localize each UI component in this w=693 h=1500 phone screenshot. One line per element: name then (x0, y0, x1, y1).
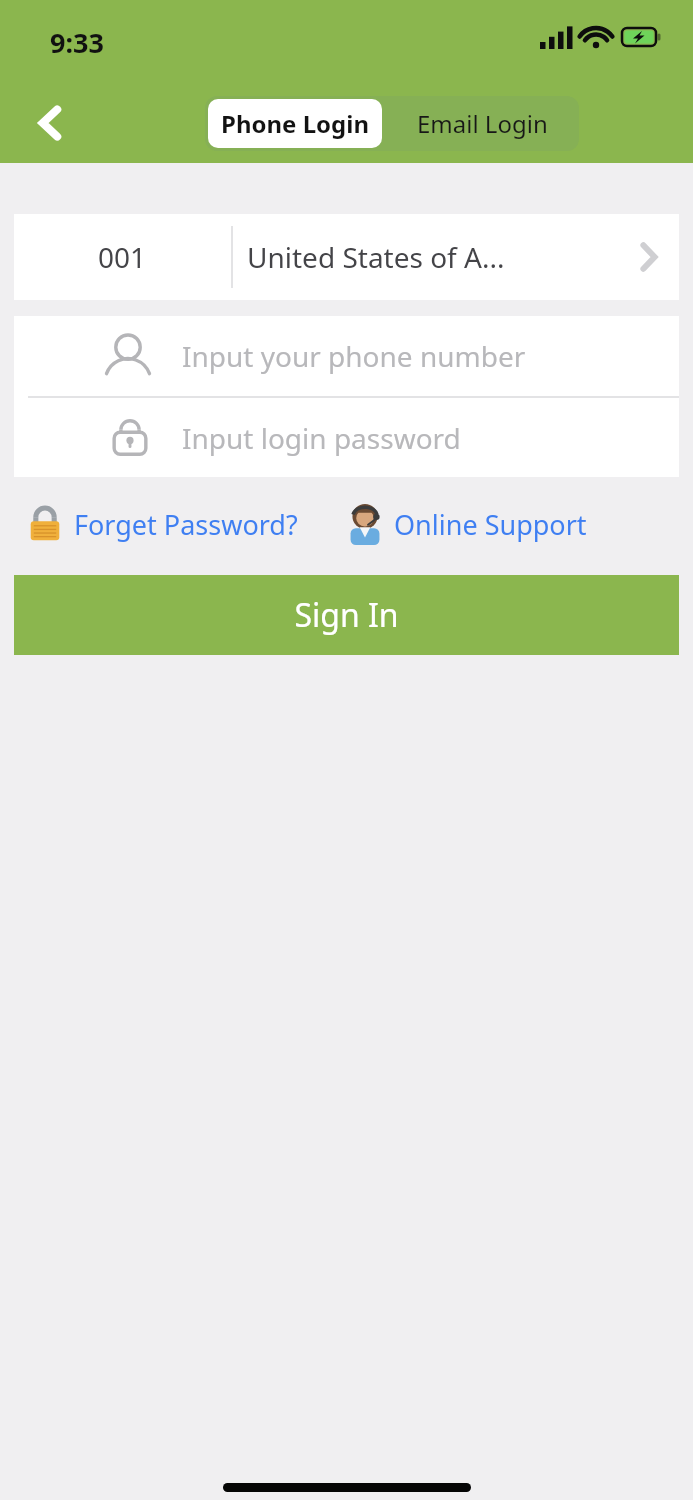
staticText: Input your phone number (182, 337, 526, 375)
button[interactable]: Sign In (14, 575, 679, 655)
staticText: Email Login (417, 107, 548, 140)
staticText: Sign In (294, 593, 399, 637)
button[interactable]: Online Support (346, 503, 587, 545)
button[interactable]: Email Login (385, 96, 579, 151)
staticText: 001 (98, 238, 147, 276)
staticText: United States of A... (247, 238, 505, 276)
staticText: Online Support (394, 506, 587, 543)
button[interactable]: Phone Login (208, 99, 382, 148)
staticText: Phone Login (221, 107, 370, 140)
button[interactable]: 001 (14, 214, 679, 300)
button[interactable]: Input login password (14, 398, 679, 477)
staticText: Forget Password? (74, 506, 298, 543)
staticText: 9:33 (50, 24, 104, 61)
button[interactable]: Back (20, 94, 80, 152)
staticText: Input login password (182, 419, 461, 457)
button[interactable]: Input your phone number (14, 316, 679, 396)
button[interactable]: Forget Password? (28, 505, 298, 543)
